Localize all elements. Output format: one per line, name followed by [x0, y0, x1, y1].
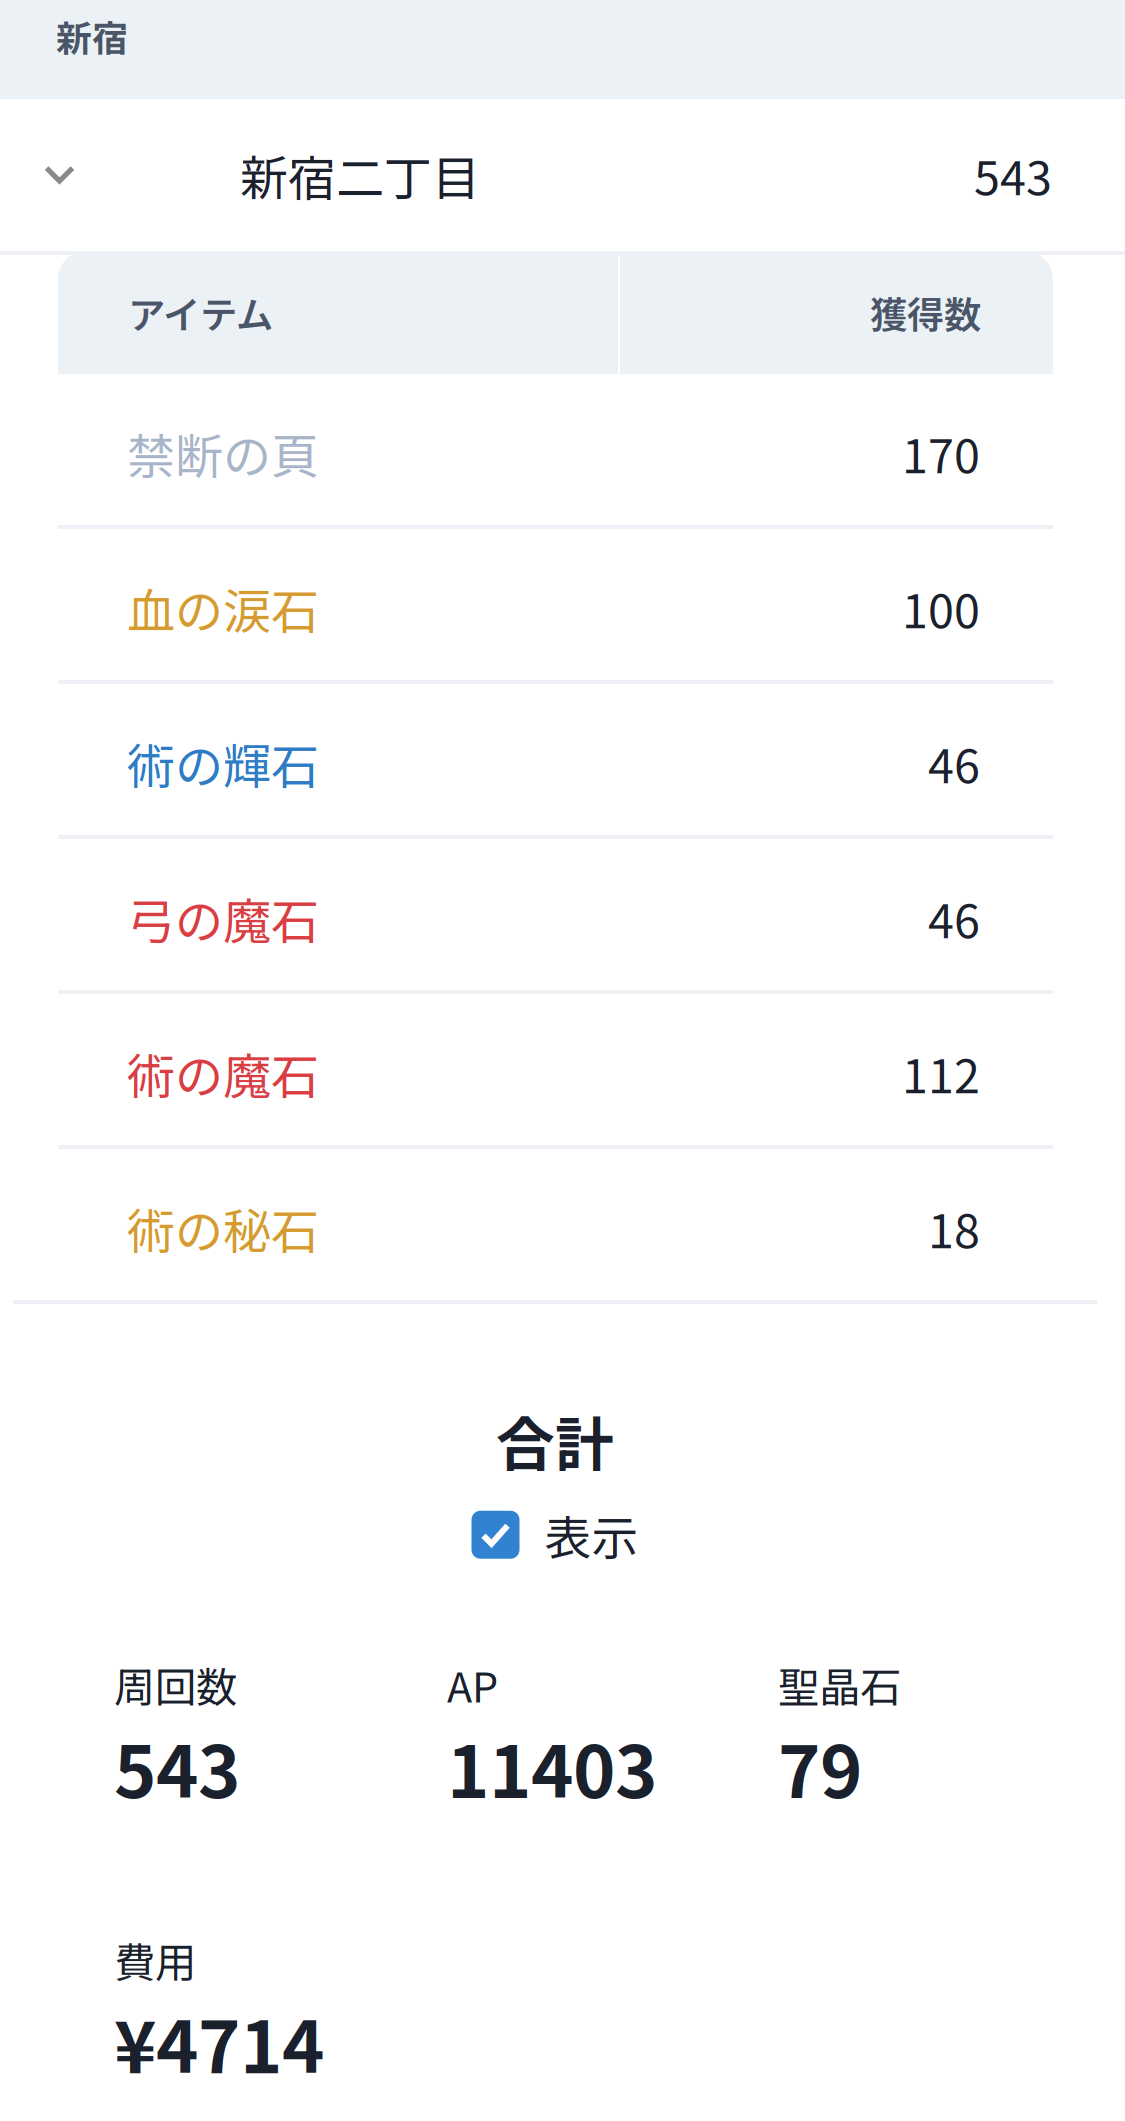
staticText: 血の涙石: [127, 573, 319, 643]
staticText: ¥4714: [114, 1990, 324, 2094]
staticText: 18: [928, 1194, 980, 1262]
staticText: 543: [114, 1714, 240, 1819]
staticText: 11403: [447, 1714, 657, 1819]
button[interactable]: 表示: [471, 1483, 653, 1569]
staticText: アイテム: [128, 285, 273, 340]
staticText: 聖晶石: [778, 1654, 901, 1714]
staticText: 100: [902, 574, 980, 642]
staticText: 表示: [544, 1501, 638, 1569]
staticText: AP: [447, 1654, 498, 1714]
staticText: 170: [902, 419, 980, 487]
staticText: 禁断の頁: [127, 418, 319, 488]
staticText: 新宿: [56, 10, 128, 62]
staticText: 獲得数: [870, 285, 981, 340]
staticText: 112: [902, 1039, 980, 1107]
staticText: 46: [928, 884, 980, 952]
staticText: 周回数: [114, 1654, 237, 1714]
staticText: 合計: [496, 1398, 614, 1483]
button[interactable]: 新宿二丁目: [0, 99, 1125, 251]
staticText: 79: [778, 1714, 862, 1819]
staticText: 術の魔石: [127, 1038, 319, 1108]
staticText: 弓の魔石: [127, 883, 319, 953]
staticText: 46: [928, 729, 980, 797]
staticText: 術の秘石: [127, 1193, 319, 1263]
staticText: 術の輝石: [127, 728, 319, 798]
staticText: 543: [974, 141, 1052, 209]
staticText: 費用: [114, 1930, 196, 1990]
staticText: 新宿二丁目: [240, 140, 480, 210]
